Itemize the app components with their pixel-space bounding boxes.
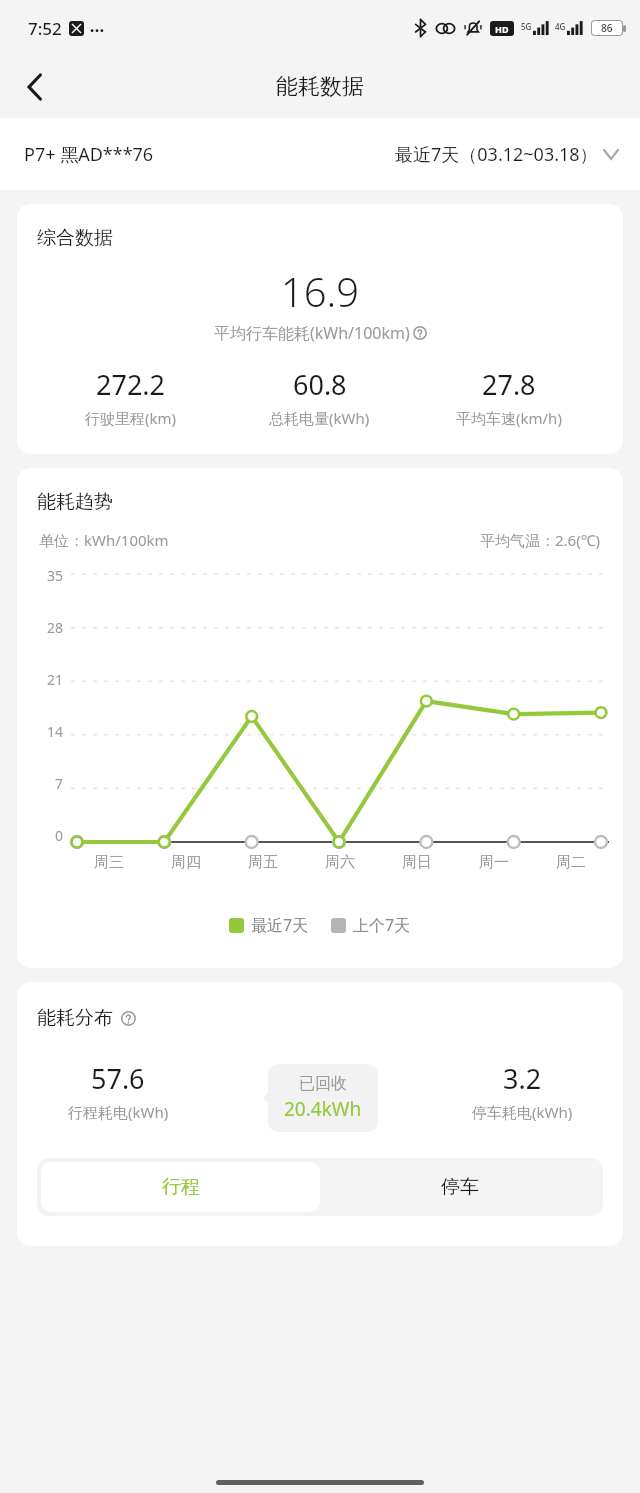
staticText: 周四: [171, 853, 201, 872]
staticText: 单位：kWh/100km: [39, 530, 169, 550]
staticText: 停车耗电(kWh): [472, 1102, 573, 1122]
staticText: 7: [37, 774, 63, 790]
staticText: 能耗趋势: [37, 490, 113, 514]
staticText: HD: [495, 23, 509, 35]
button[interactable]: 行程: [41, 1162, 320, 1212]
staticText: 停车: [441, 1175, 479, 1199]
button[interactable]: 能耗趋势: [17, 468, 623, 968]
staticText: 周三: [94, 853, 124, 872]
staticText: 已回收: [299, 1074, 347, 1094]
staticText: 最近7天: [251, 914, 309, 936]
staticText: 综合数据: [37, 226, 113, 250]
staticText: 5G: [521, 21, 532, 32]
staticText: 上个7天: [353, 914, 411, 936]
staticText: 行驶里程(km): [85, 408, 177, 428]
staticText: 能耗数据: [276, 73, 364, 101]
staticText: 行程: [162, 1175, 200, 1199]
staticText: 272.2: [96, 366, 166, 403]
staticText: 4G: [555, 21, 566, 32]
button[interactable]: P7+ 黑AD***76: [24, 142, 154, 167]
staticText: 3.2: [503, 1060, 542, 1097]
staticText: 周六: [325, 853, 355, 872]
staticText: 27.8: [482, 366, 536, 403]
button[interactable]: 停车: [320, 1162, 599, 1212]
staticText: 14: [37, 722, 63, 738]
staticText: 能耗分布: [37, 1006, 113, 1030]
staticText: 28: [37, 618, 63, 634]
staticText: 周五: [248, 853, 278, 872]
staticText: 总耗电量(kWh): [269, 408, 370, 428]
staticText: 周二: [556, 853, 586, 872]
staticText: 86: [601, 21, 613, 35]
staticText: 16.9: [37, 264, 603, 318]
button[interactable]: 能耗分布: [17, 982, 623, 1246]
staticText: 35: [37, 566, 63, 582]
staticText: 平均行车能耗(kWh/100km): [214, 322, 410, 344]
staticText: 平均气温：2.6(℃): [480, 530, 601, 550]
staticText: 57.6: [91, 1060, 145, 1097]
staticText: 周日: [402, 853, 432, 872]
staticText: 最近7天（03.12~03.18）: [395, 142, 598, 167]
staticText: 7:52: [28, 17, 62, 40]
staticText: 平均车速(km/h): [456, 408, 562, 428]
staticText: 行程耗电(kWh): [68, 1102, 169, 1122]
staticText: 20.4kWh: [284, 1096, 362, 1122]
staticText: 0: [37, 826, 63, 842]
staticText: 21: [37, 670, 63, 686]
staticText: 60.8: [293, 366, 347, 403]
button[interactable]: 最近7天（03.12~03.18）: [395, 142, 618, 167]
staticText: 周一: [479, 853, 509, 872]
button[interactable]: 返回: [10, 63, 58, 111]
button[interactable]: 综合数据: [17, 204, 623, 454]
